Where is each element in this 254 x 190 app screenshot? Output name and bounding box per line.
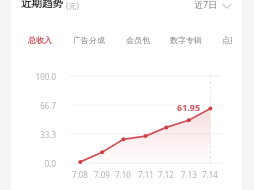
staticText: 点播 bbox=[222, 35, 232, 45]
staticText: 7.13 bbox=[177, 169, 201, 180]
staticText: 数字专辑 bbox=[170, 35, 202, 45]
staticText: 100.0 bbox=[16, 71, 56, 82]
staticText: 7.09 bbox=[90, 169, 114, 180]
button[interactable]: 点播 bbox=[222, 35, 232, 45]
staticText: 7.10 bbox=[111, 169, 135, 180]
staticText: 7.11 bbox=[134, 169, 158, 180]
staticText: 61.95 bbox=[177, 101, 201, 113]
staticText: 广告分成 bbox=[73, 35, 105, 45]
staticText: 7.08 bbox=[68, 169, 92, 180]
staticText: 7.12 bbox=[154, 169, 178, 180]
staticText: 总收入 bbox=[28, 35, 52, 45]
staticText: (元) bbox=[66, 0, 79, 11]
staticText: 0.0 bbox=[16, 158, 56, 169]
staticText: 7.14 bbox=[198, 169, 222, 180]
button[interactable]: 近7日 bbox=[194, 0, 232, 10]
staticText: 近7日 bbox=[194, 0, 218, 10]
button[interactable]: 总收入 bbox=[28, 35, 52, 45]
button[interactable]: 广告分成 bbox=[73, 35, 105, 45]
staticText: 66.7 bbox=[16, 100, 56, 111]
staticText: 近期趋势 bbox=[21, 0, 63, 10]
button[interactable]: 会员包 bbox=[126, 35, 150, 45]
button[interactable]: 数字专辑 bbox=[170, 35, 202, 45]
staticText: 33.3 bbox=[16, 129, 56, 140]
staticText: 会员包 bbox=[126, 35, 150, 45]
